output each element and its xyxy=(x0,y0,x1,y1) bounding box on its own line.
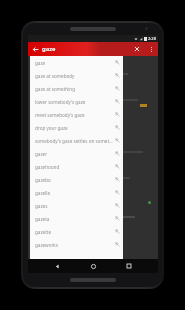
button[interactable]: drop your gaze xyxy=(30,121,123,134)
staticText: gaze xyxy=(35,60,115,66)
button[interactable]: gazebo xyxy=(30,173,123,186)
button[interactable]: gazer xyxy=(30,147,123,160)
button[interactable]: gazette xyxy=(30,225,123,238)
staticText: gazes xyxy=(35,203,115,209)
button[interactable]: Back xyxy=(50,259,64,273)
button[interactable]: gazehound xyxy=(30,160,123,173)
button[interactable]: Home xyxy=(86,259,100,273)
staticText: lower somebody's gaze xyxy=(35,99,115,105)
button[interactable]: gazes xyxy=(30,199,123,212)
staticText: 2:28 xyxy=(148,36,156,41)
button[interactable]: gaze xyxy=(30,56,123,69)
button[interactable]: Recent apps xyxy=(122,259,136,273)
button[interactable]: gaze at somebody xyxy=(30,69,123,82)
button[interactable]: gazeworks xyxy=(30,238,123,251)
button[interactable]: Clear xyxy=(130,42,144,56)
button[interactable]: gaze at something xyxy=(30,82,123,95)
staticText: gazer xyxy=(35,151,115,157)
staticText: drop your gaze xyxy=(35,125,115,131)
button[interactable]: Back xyxy=(28,42,42,56)
staticText: gaze at something xyxy=(35,86,115,92)
button[interactable]: somebody's gaze settles on something xyxy=(30,134,123,147)
button[interactable]: meet somebody's gaze xyxy=(30,108,123,121)
staticText: gazette xyxy=(35,229,115,235)
button[interactable]: More options xyxy=(144,42,158,56)
button[interactable]: gazeta xyxy=(30,212,123,225)
staticText: gazehound xyxy=(35,164,115,170)
staticText: gazeta xyxy=(35,216,115,222)
staticText: gaze xyxy=(42,45,130,53)
staticText: gazebo xyxy=(35,177,115,183)
staticText: somebody's gaze settles on something xyxy=(35,138,115,144)
staticText: gaze at somebody xyxy=(35,73,115,79)
staticText: gazelle xyxy=(35,190,115,196)
staticText: meet somebody's gaze xyxy=(35,112,115,118)
button[interactable]: lower somebody's gaze xyxy=(30,95,123,108)
button[interactable]: gazelle xyxy=(30,186,123,199)
staticText: gazeworks xyxy=(35,242,115,248)
